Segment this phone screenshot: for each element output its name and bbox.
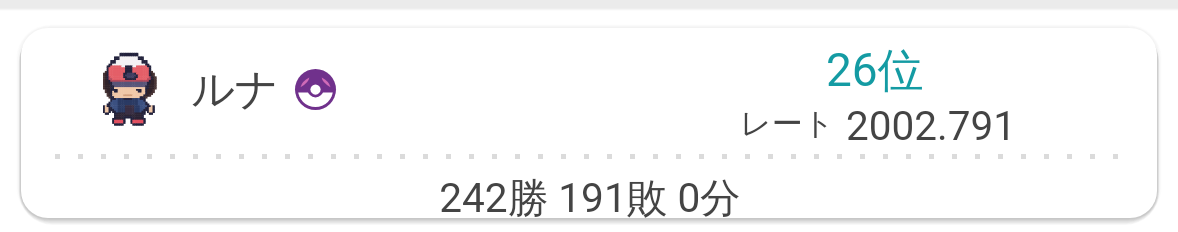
staticText: ルナ — [191, 63, 280, 117]
button[interactable]: ルナ — [21, 28, 1157, 218]
staticText: レート — [740, 104, 835, 143]
staticText: 26位 — [826, 42, 924, 100]
staticText: 2002.791 — [846, 102, 1017, 149]
other: Master ball rank icon — [295, 69, 336, 110]
staticText: 242勝 191敗 0分 — [22, 173, 1157, 218]
